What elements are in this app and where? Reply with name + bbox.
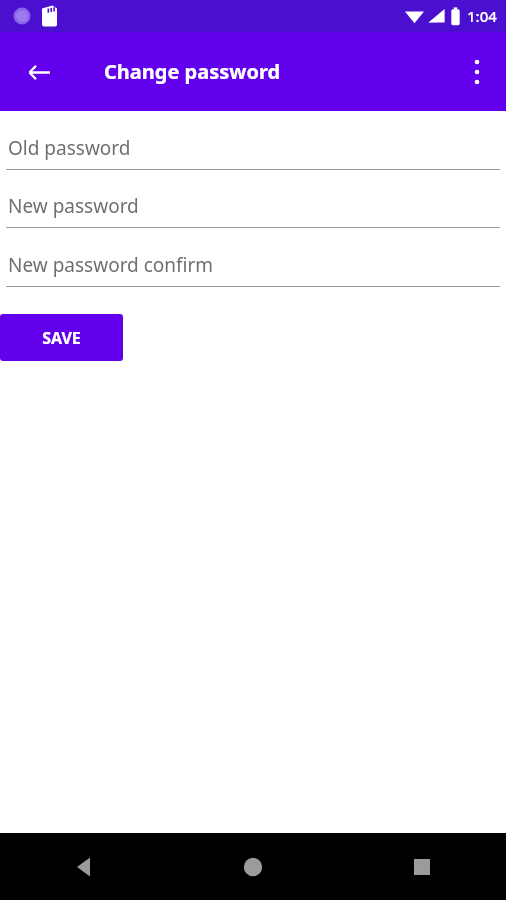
button[interactable]: Recent apps [337, 833, 506, 900]
staticText: 1:04 [467, 6, 497, 26]
button[interactable]: Home [168, 833, 337, 900]
button[interactable]: More options [454, 49, 500, 95]
button[interactable]: Navigate up [15, 48, 63, 96]
staticText: Old password [8, 135, 131, 161]
button[interactable]: Back [0, 833, 168, 900]
button[interactable]: New password confirm [0, 250, 506, 287]
button[interactable]: SAVE [0, 314, 123, 361]
staticText: New password [8, 193, 139, 219]
staticText: SAVE [42, 327, 81, 349]
button[interactable]: New password [0, 191, 506, 228]
button[interactable]: Old password [0, 133, 506, 170]
staticText: New password confirm [8, 252, 214, 278]
staticText: Change password [104, 58, 281, 85]
